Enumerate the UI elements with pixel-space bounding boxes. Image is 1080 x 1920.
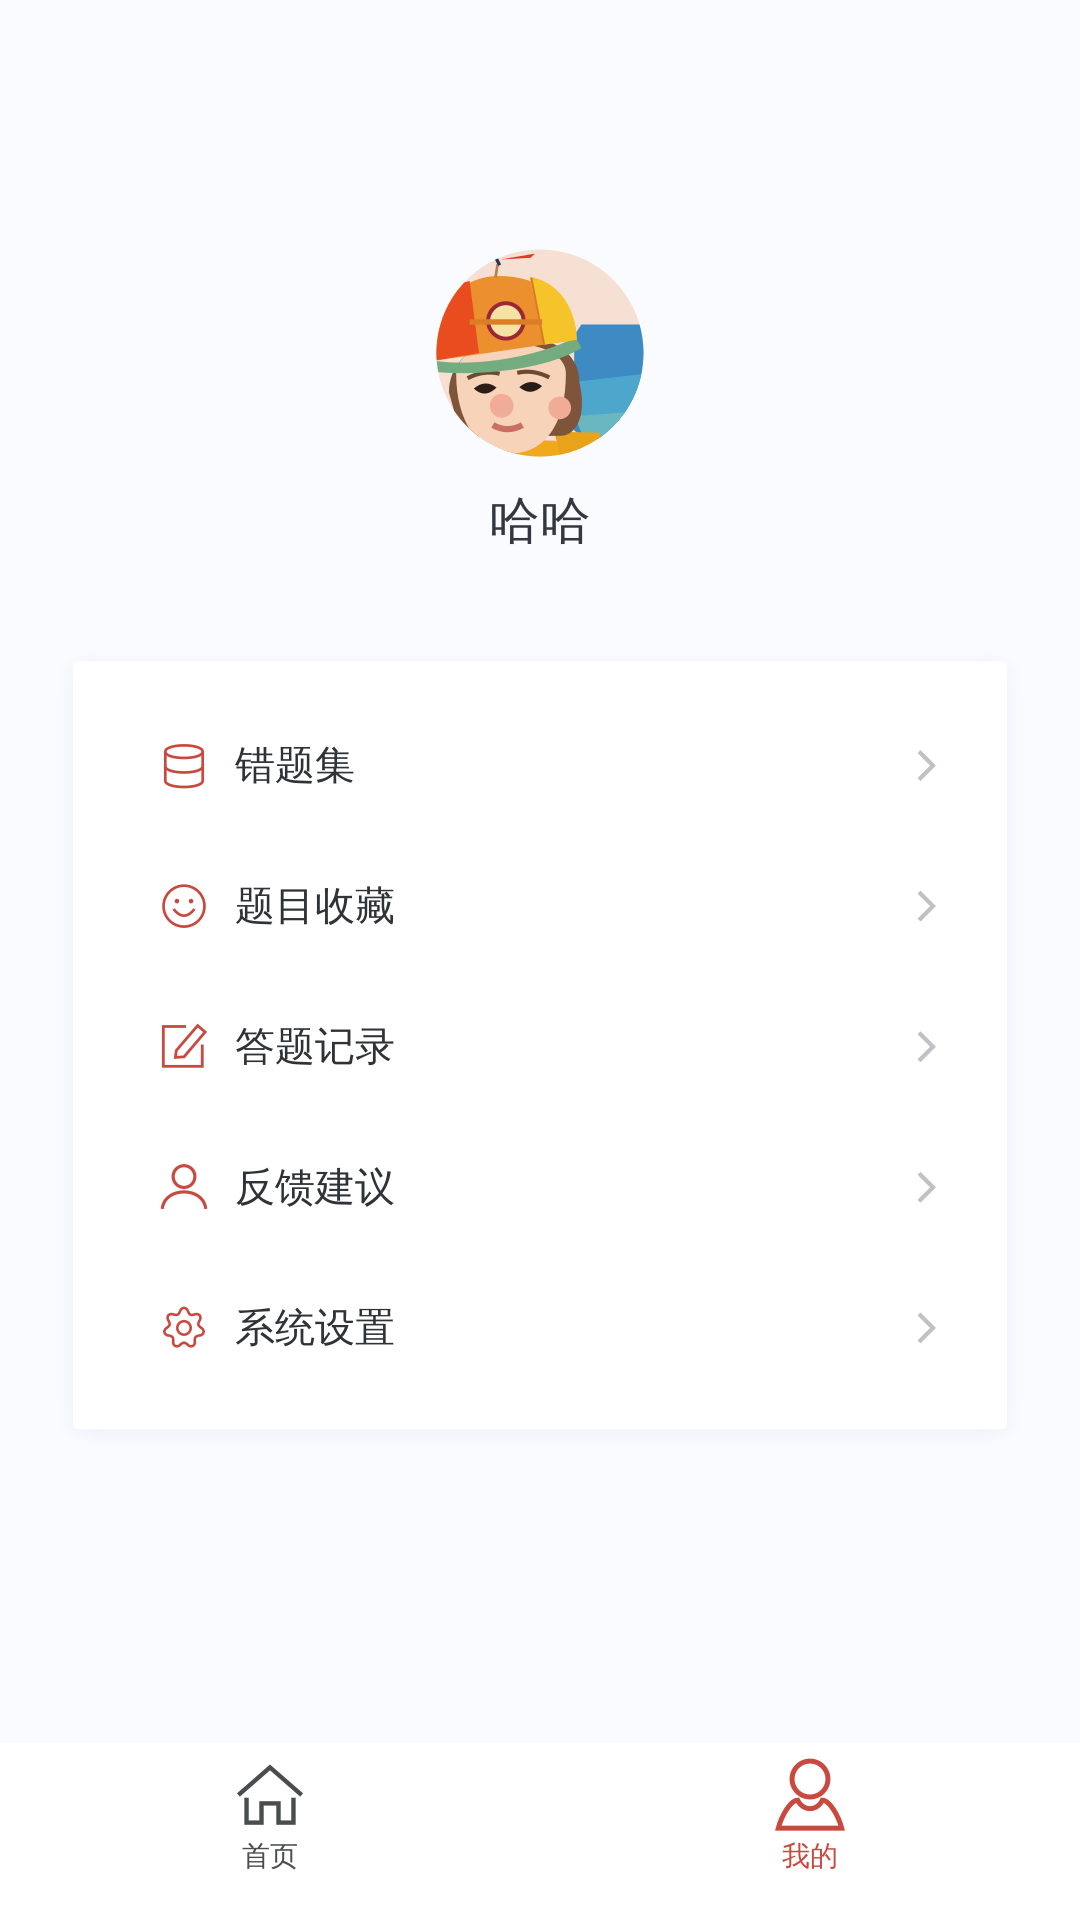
staticText: 首页	[242, 1839, 298, 1873]
staticText: 哈哈	[489, 490, 591, 552]
staticText: 系统设置	[235, 1303, 395, 1352]
button[interactable]: 题目收藏	[73, 836, 1007, 976]
button[interactable]: 首页	[0, 1743, 540, 1920]
button[interactable]: 我的	[540, 1743, 1080, 1920]
staticText: 答题记录	[235, 1022, 395, 1071]
button[interactable]: 错题集	[73, 695, 1007, 836]
button[interactable]: 答题记录	[73, 976, 1007, 1117]
button[interactable]: 反馈建议	[73, 1117, 1007, 1258]
staticText: 错题集	[235, 741, 355, 790]
staticText: 题目收藏	[235, 882, 395, 931]
staticText: 反馈建议	[235, 1163, 395, 1212]
button[interactable]: 系统设置	[73, 1258, 1007, 1398]
staticText: 我的	[782, 1839, 838, 1873]
